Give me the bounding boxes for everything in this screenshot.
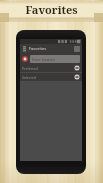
staticText: Favorites bbox=[25, 2, 78, 17]
button[interactable]: More options bbox=[74, 46, 80, 52]
button[interactable]: Preferred bbox=[20, 64, 82, 72]
other: Add favorite bbox=[22, 56, 28, 62]
staticText: Enter location bbox=[32, 57, 55, 62]
button[interactable]: Add favorite bbox=[20, 53, 82, 64]
staticText: Selected bbox=[22, 75, 74, 80]
button[interactable]: Navigate up bbox=[20, 44, 82, 53]
other: Navigate up bbox=[22, 46, 27, 51]
button[interactable]: Remove Preferred bbox=[74, 65, 80, 71]
staticText: Preferred bbox=[22, 66, 74, 71]
button[interactable]: Remove Selected bbox=[74, 74, 80, 80]
button[interactable]: Selected bbox=[20, 73, 82, 81]
staticText: Favorites bbox=[29, 46, 74, 51]
